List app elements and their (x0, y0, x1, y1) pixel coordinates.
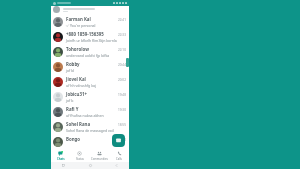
staticText: Tohorolow (66, 46, 89, 52)
staticText: 19:30 (118, 108, 126, 112)
staticText: You're personal appointment (70, 23, 117, 28)
staticText: Sohel Rana (66, 121, 91, 127)
staticText: 20:02 (118, 78, 126, 82)
button[interactable]: Calls (109, 150, 129, 162)
button[interactable]: Sohel Rana (51, 119, 129, 134)
button[interactable]: Bongo (51, 134, 129, 149)
button[interactable]: Status (70, 150, 89, 162)
button[interactable]: Jiovel Kal (51, 74, 129, 89)
button[interactable]: Tohorolow (51, 44, 129, 59)
staticText: Jiovel Kal (66, 76, 86, 82)
button[interactable]: +880 1859-156395 (51, 29, 129, 44)
staticText: Sohel Rana de massaged voil lowd see (66, 128, 117, 133)
other: Recents (62, 164, 65, 167)
staticText: Calls (116, 157, 122, 161)
staticText: Status (76, 157, 84, 161)
staticText: Joinfh ur bfkelh flim3kjn kornla nias a … (66, 38, 117, 43)
staticText: jof bl (66, 68, 75, 73)
staticText: Communities (91, 157, 108, 161)
button[interactable]: Rafi Y (51, 104, 129, 119)
button[interactable]: Jobicu31+ (51, 89, 129, 104)
staticText: 22:33 (118, 33, 126, 37)
staticText: 18:20 (118, 138, 126, 142)
staticText: Rafi Y (66, 106, 79, 112)
staticText: uf fhufisa nubsa akhen (66, 113, 104, 118)
staticText: Jobicu31+ (66, 91, 87, 97)
other: Home (89, 164, 92, 167)
button[interactable]: Communities (89, 150, 109, 162)
staticText: jof b (66, 98, 74, 103)
staticText: Robby (66, 61, 80, 67)
button[interactable]: Farman Kal (51, 14, 129, 29)
button[interactable]: Chats (51, 150, 70, 162)
staticText: 18:55 (118, 123, 126, 127)
staticText: 22:41 (118, 18, 126, 22)
staticText: Chats (57, 157, 65, 161)
button[interactable]: Robby (51, 59, 129, 74)
staticText: Bongo (66, 136, 81, 142)
staticText: 19:48 (118, 93, 126, 97)
staticText: undervand uobfci fjp bifka acnei an bfke… (66, 53, 117, 58)
staticText: 22:10 (118, 48, 126, 52)
staticText: uf hh vdrushfg kaj (66, 83, 96, 88)
other: Back (115, 164, 118, 167)
staticText: +880 1859-156395 (66, 31, 104, 37)
button[interactable]: New chat (112, 134, 125, 147)
staticText: 20:44 (118, 63, 126, 67)
staticText: Farman Kal (66, 16, 91, 22)
